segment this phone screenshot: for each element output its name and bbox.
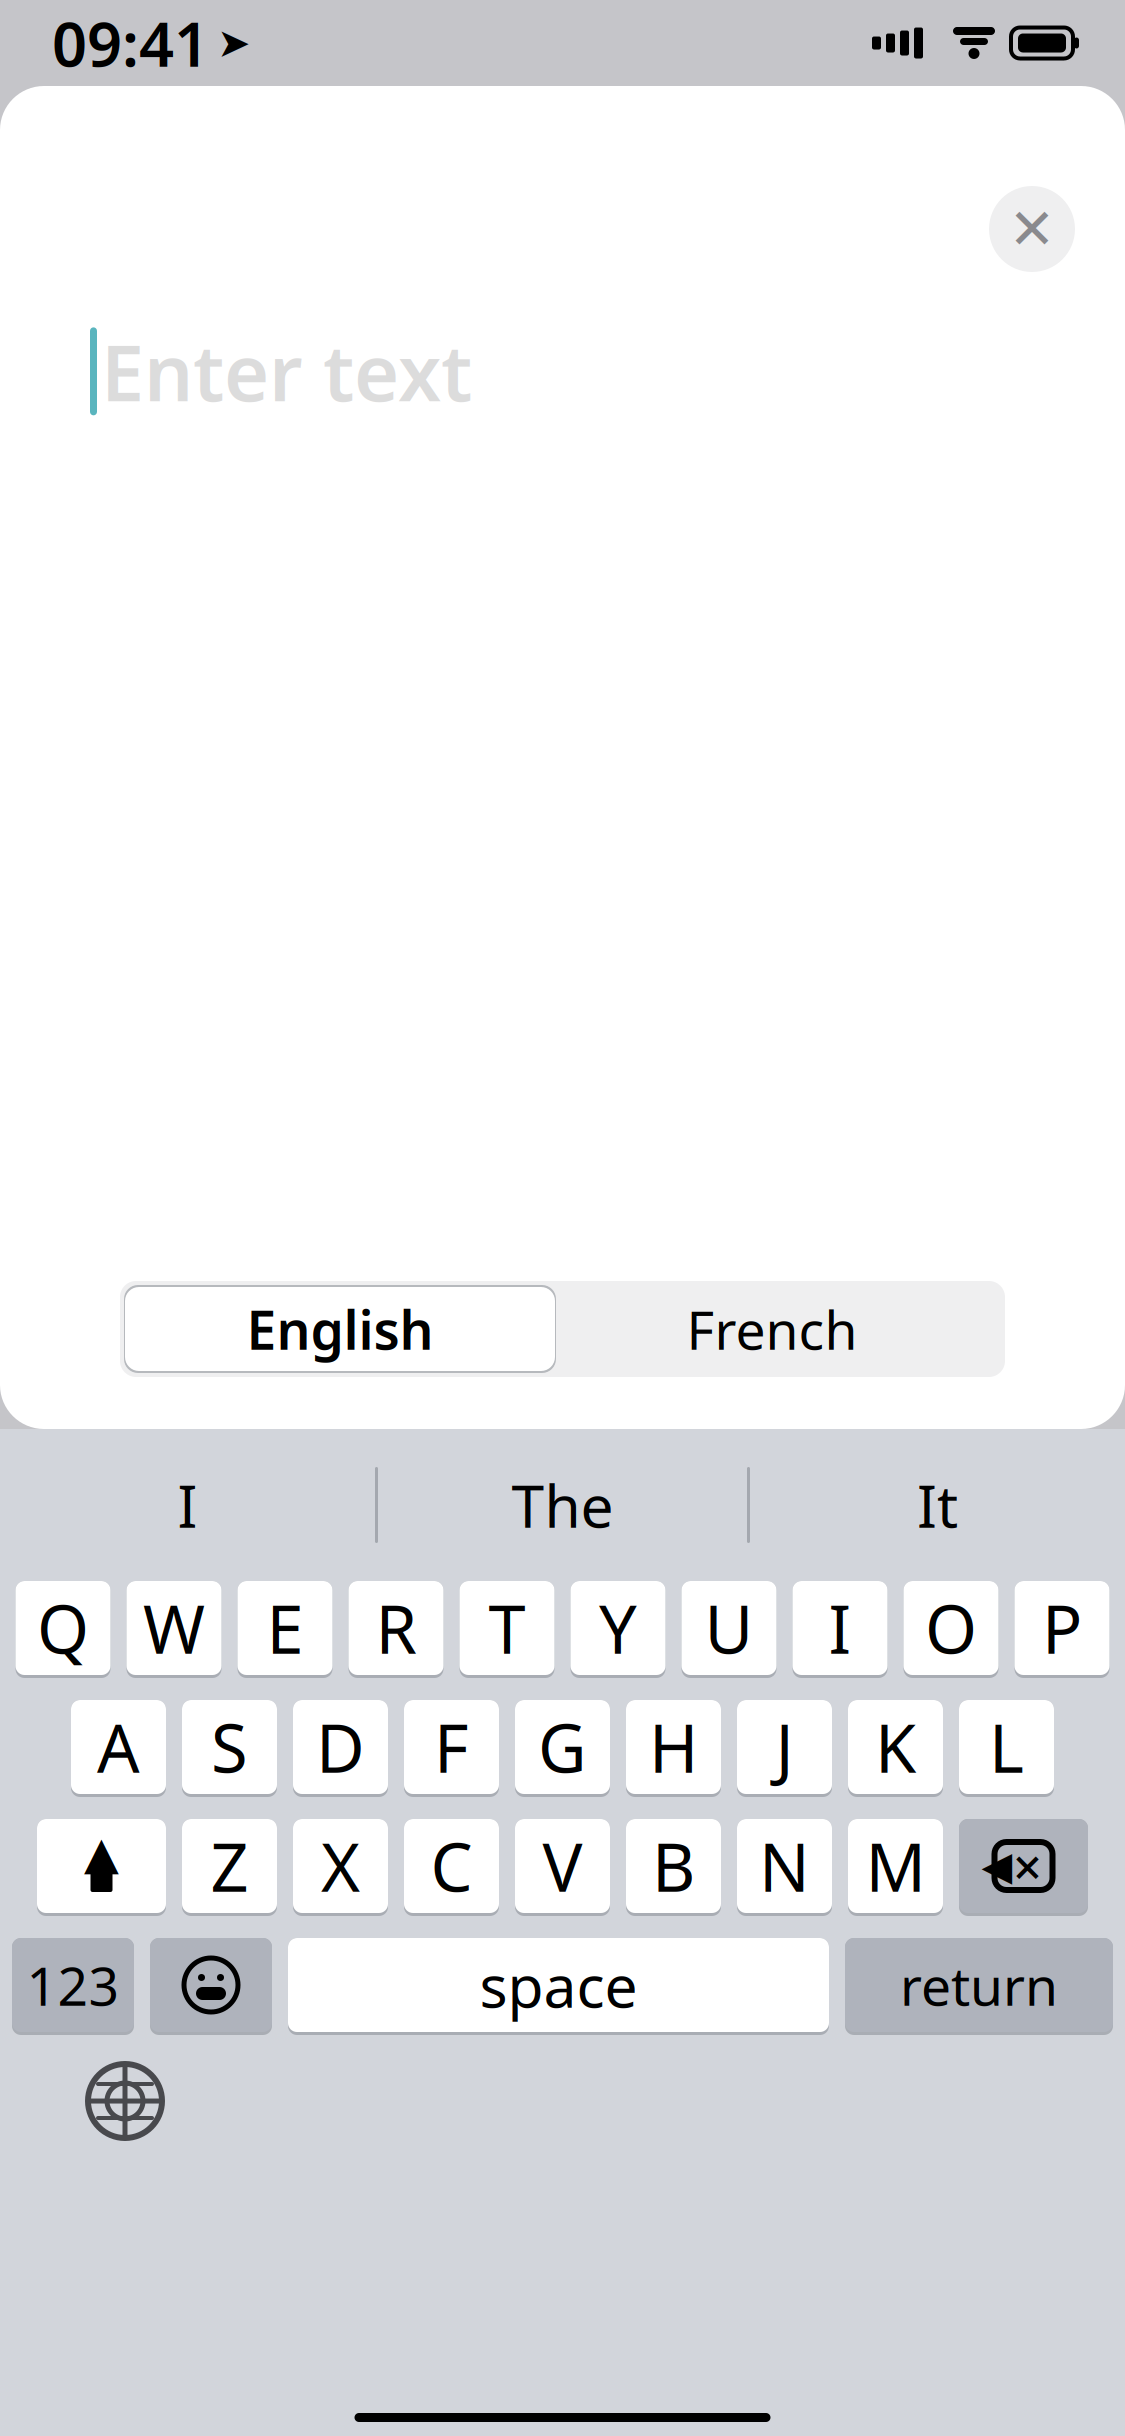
button[interactable]: 123 [12, 1938, 134, 2035]
staticText: L [989, 1704, 1024, 1793]
staticText: ➤ [217, 20, 251, 66]
button[interactable]: S [182, 1700, 277, 1797]
button[interactable]: I [0, 1450, 375, 1560]
staticText: English [246, 1294, 433, 1364]
staticText: French [686, 1294, 857, 1364]
staticText: H [649, 1704, 698, 1793]
staticText: P [1042, 1585, 1082, 1674]
staticText: O [925, 1585, 977, 1674]
button[interactable]: U [681, 1581, 776, 1678]
button[interactable]: D [293, 1700, 388, 1797]
button[interactable]: Y [570, 1581, 665, 1678]
staticText: U [704, 1585, 753, 1674]
staticText: R [375, 1584, 416, 1672]
button[interactable]: P [1014, 1581, 1109, 1678]
button[interactable]: A [71, 1700, 166, 1797]
staticText: Z [210, 1823, 248, 1912]
staticText: Q [37, 1584, 89, 1672]
button[interactable]: O [903, 1581, 998, 1678]
staticText: Q [37, 1585, 89, 1674]
staticText: X [321, 1822, 360, 1910]
button[interactable]: J [737, 1700, 832, 1797]
staticText: O [925, 1584, 977, 1672]
button[interactable]: L [959, 1700, 1054, 1797]
button[interactable]: Next keyboard [64, 2049, 186, 2153]
button[interactable]: Z [182, 1819, 277, 1916]
staticText: D [316, 1703, 365, 1791]
button[interactable]: return [845, 1938, 1113, 2035]
button[interactable]: C [404, 1819, 499, 1916]
staticText: P [1042, 1584, 1082, 1672]
staticText: G [538, 1703, 587, 1791]
staticText: English [246, 1294, 433, 1364]
button[interactable]: X [293, 1819, 388, 1916]
staticText: T [488, 1585, 525, 1674]
button[interactable]: Close [989, 186, 1075, 272]
button[interactable]: I [792, 1581, 887, 1678]
button[interactable]: N [737, 1819, 832, 1916]
staticText: Y [599, 1584, 637, 1672]
staticText: B [652, 1823, 695, 1912]
staticText: S [211, 1704, 248, 1793]
staticText: 123 [26, 1951, 119, 2022]
button[interactable]: M [848, 1819, 943, 1916]
button[interactable]: W [126, 1581, 221, 1678]
button[interactable]: E [237, 1581, 332, 1678]
button[interactable]: T [459, 1581, 554, 1678]
staticText: × [1013, 1832, 1042, 1900]
staticText: Y [599, 1585, 637, 1674]
button[interactable]: F [404, 1700, 499, 1797]
staticText: L [989, 1703, 1024, 1791]
staticText: 09:41 [52, 2, 209, 84]
staticText: B [652, 1822, 695, 1910]
staticText: space [479, 1947, 637, 2025]
staticText: S [211, 1703, 248, 1791]
staticText: V [542, 1822, 582, 1910]
staticText: return [900, 1950, 1058, 2020]
button[interactable]: English [124, 1285, 556, 1373]
staticText: V [542, 1823, 582, 1912]
staticText: E [266, 1584, 303, 1672]
staticText: G [538, 1704, 587, 1793]
staticText: The [511, 1466, 613, 1544]
button[interactable]: Delete [959, 1819, 1088, 1916]
button[interactable]: R [348, 1581, 443, 1678]
staticText: space [479, 1946, 637, 2024]
button[interactable]: B [626, 1819, 721, 1916]
button[interactable]: Shift [37, 1819, 166, 1916]
staticText: K [875, 1704, 916, 1793]
staticText: U [704, 1584, 753, 1672]
staticText: F [434, 1703, 469, 1791]
button[interactable]: Q [15, 1581, 110, 1678]
staticText: J [775, 1704, 793, 1793]
staticText: I [828, 1585, 851, 1674]
staticText: N [759, 1823, 810, 1912]
staticText: Z [210, 1822, 248, 1910]
button[interactable]: space [288, 1938, 829, 2035]
staticText: H [649, 1703, 698, 1791]
staticText: W [143, 1584, 205, 1672]
staticText: ✕ [1008, 197, 1055, 261]
staticText: C [430, 1822, 472, 1910]
button[interactable]: The [378, 1450, 747, 1560]
staticText: F [434, 1704, 469, 1793]
staticText: K [875, 1703, 916, 1791]
staticText: D [316, 1704, 365, 1793]
staticText: return [900, 1951, 1058, 2022]
staticText: X [321, 1823, 360, 1912]
staticText: W [143, 1585, 205, 1674]
staticText: T [488, 1584, 525, 1672]
button[interactable]: Emoji [150, 1938, 272, 2035]
button[interactable]: K [848, 1700, 943, 1797]
button[interactable]: French [556, 1285, 988, 1373]
staticText: A [97, 1703, 140, 1791]
staticText: ▲ [84, 1827, 119, 1879]
staticText: E [266, 1585, 303, 1674]
button[interactable]: G [515, 1700, 610, 1797]
button[interactable]: V [515, 1819, 610, 1916]
button[interactable]: It [750, 1450, 1125, 1560]
button[interactable]: H [626, 1700, 721, 1797]
staticText: C [430, 1823, 472, 1912]
staticText: Enter text [101, 320, 472, 423]
staticText: A [97, 1704, 140, 1793]
